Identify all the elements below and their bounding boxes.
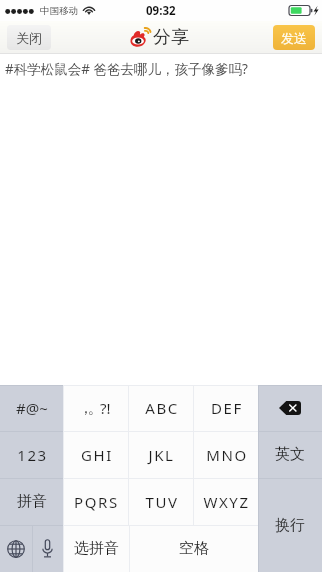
button[interactable]: GHI [63,431,128,478]
staticText: 选拼音 [74,539,119,558]
staticText: 09:32 [146,3,176,19]
button[interactable]: 发送 [273,25,315,50]
staticText: 空格 [179,539,209,558]
staticText: 中国移动 [40,5,78,17]
button[interactable]: Delete [258,385,322,431]
button[interactable]: 123 [0,431,63,478]
staticText: #@~ [16,398,48,418]
staticText: ，。 [81,399,100,418]
staticText: 123 [17,445,48,465]
button[interactable]: JKL [128,431,193,478]
staticText: 拼音 [17,492,47,511]
staticText: #科学松鼠会# 爸爸去哪儿，孩子像爹吗? [5,60,248,78]
staticText: JKL [148,445,175,465]
staticText: TUV [145,492,179,512]
button[interactable]: WXYZ [193,478,258,525]
staticText: 发送 [281,30,307,46]
button[interactable]: 空格 [129,525,258,572]
button[interactable]: 拼音 [0,478,63,525]
button[interactable]: 换行 [258,478,322,572]
staticText: 关闭 [16,30,42,46]
staticText: PQRS [74,492,119,512]
staticText: 分享 [153,26,189,49]
button[interactable]: 选拼音 [63,525,129,572]
button[interactable]: DEF [193,385,258,431]
staticText: 英文 [275,445,305,464]
button[interactable]: MNO [193,431,258,478]
staticText: 换行 [275,516,305,535]
other: Delete [279,401,301,415]
button[interactable]: PQRS [63,478,128,525]
button[interactable]: #@~ [0,385,63,431]
staticText: GHI [81,445,113,465]
staticText: WXYZ [203,492,250,512]
button[interactable]: ABC [128,385,193,431]
staticText: MNO [206,445,248,465]
button[interactable]: TUV [128,478,193,525]
staticText: ABC [145,398,179,418]
button[interactable]: 关闭 [7,25,51,50]
staticText: DEF [211,398,243,418]
button[interactable]: ，。 [63,385,128,431]
staticText: ?! [100,398,111,418]
button[interactable]: Switch keyboard language [0,525,32,572]
button[interactable]: 英文 [258,431,322,478]
button[interactable]: Voice input [32,525,63,572]
